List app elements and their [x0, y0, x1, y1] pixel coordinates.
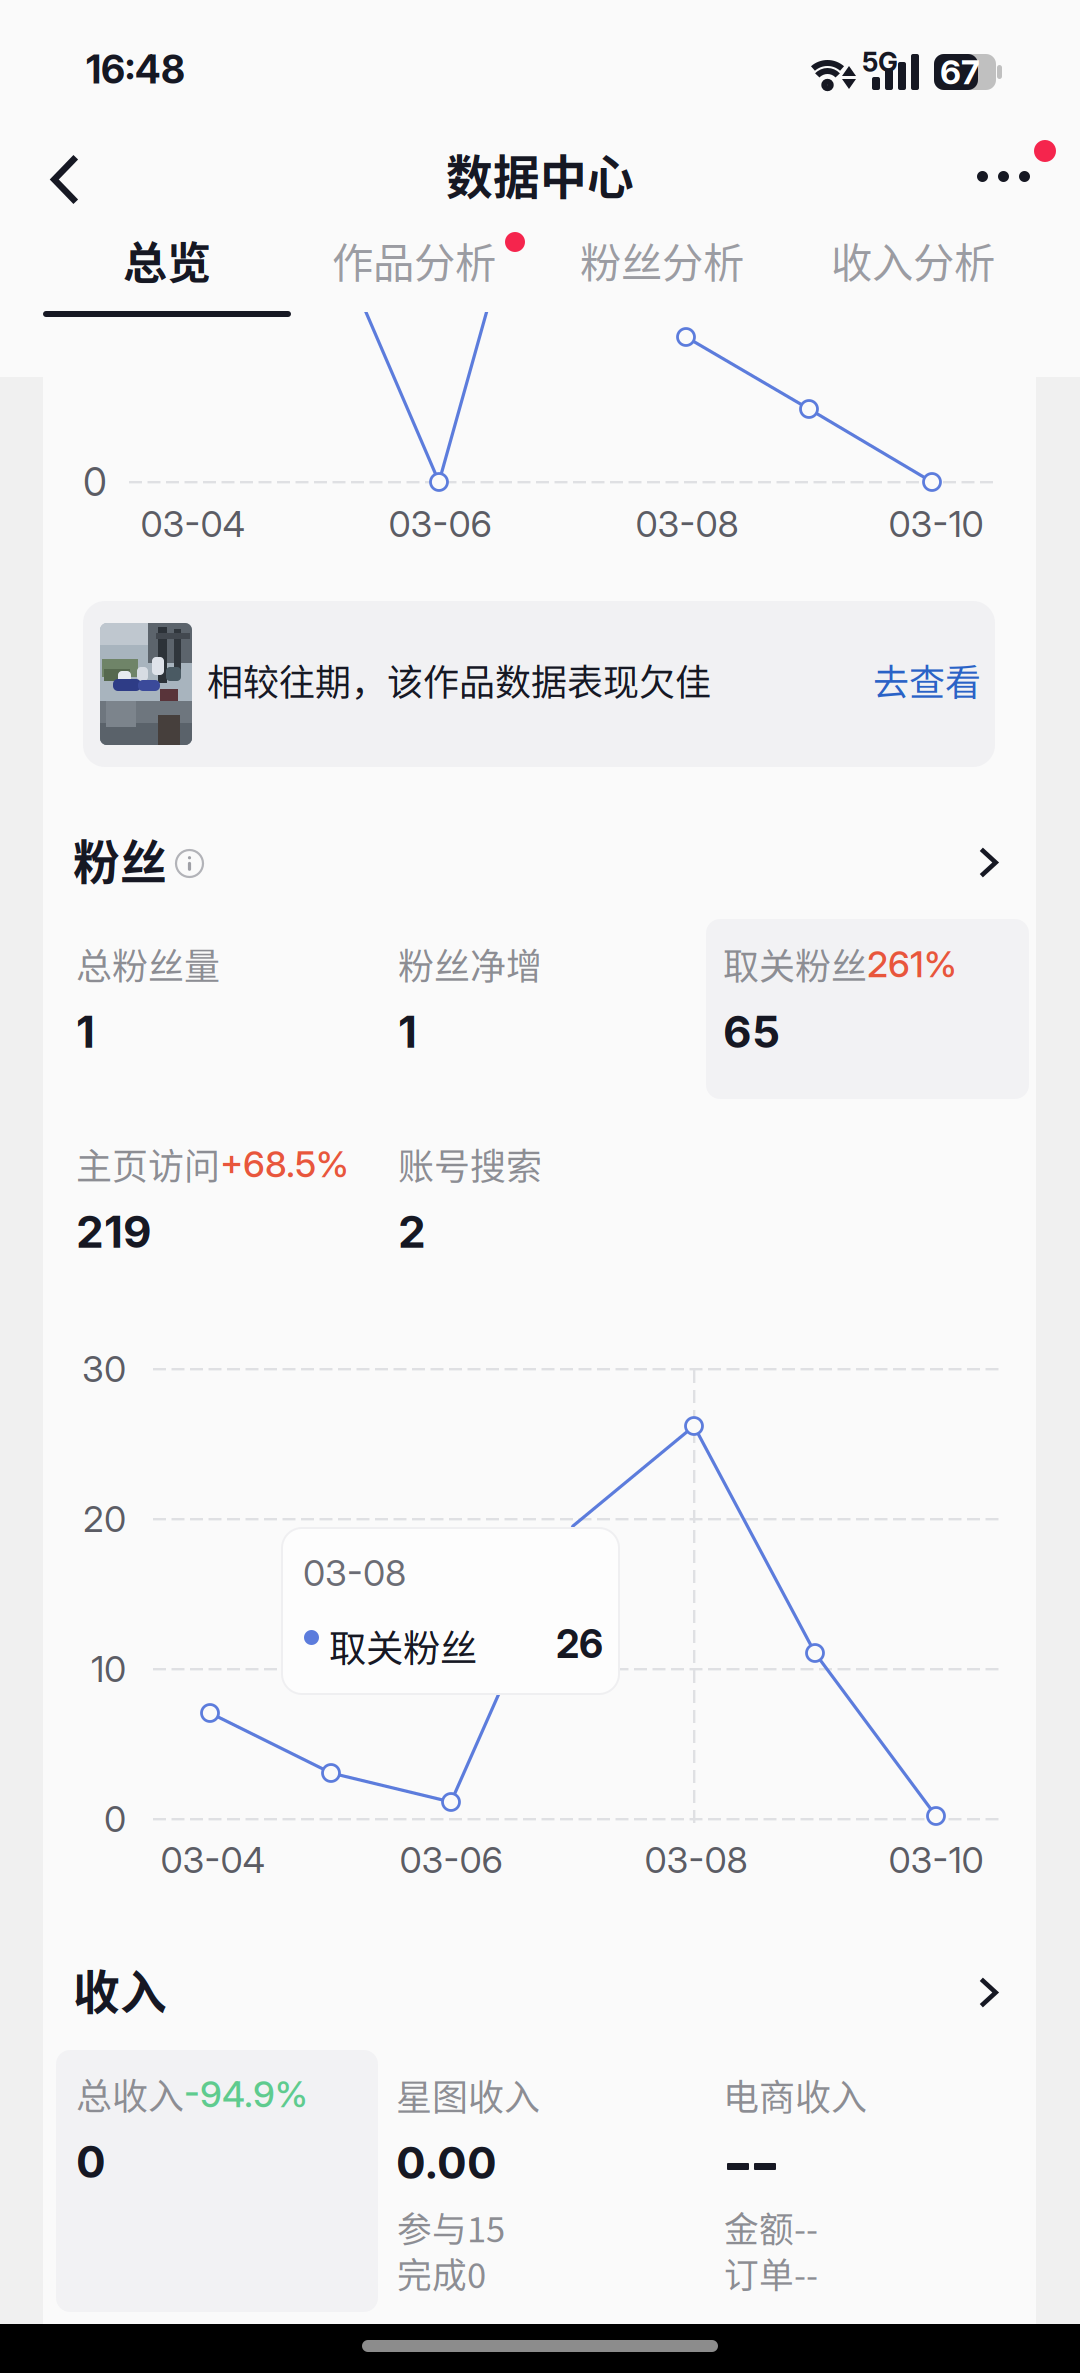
staticText: 粉丝 — [73, 825, 167, 893]
staticText: -94.9% — [184, 2072, 308, 2116]
staticText: 2 — [398, 1205, 426, 1258]
staticText: 03-10 — [888, 1838, 983, 1882]
staticText: 总粉丝量 — [76, 938, 220, 990]
staticText: 219 — [76, 1205, 152, 1258]
staticText: 取关粉丝 — [723, 938, 867, 990]
staticText: 1 — [76, 1005, 95, 1058]
staticText: 粉丝分析 — [580, 230, 744, 290]
staticText: 电商收入 — [723, 2069, 867, 2121]
staticText: 账号搜索 — [398, 1138, 542, 1190]
staticText: 03-08 — [644, 1838, 747, 1882]
button[interactable]: 相较往期，该作品数据表现欠佳 — [83, 601, 995, 767]
staticText: 10 — [91, 1647, 126, 1691]
staticText: 16:48 — [86, 46, 185, 93]
staticText: 1 — [398, 1005, 417, 1058]
staticText: 粉丝净增 — [398, 938, 542, 990]
staticText: 03-04 — [140, 502, 245, 546]
staticText: 20 — [83, 1497, 126, 1541]
staticText: 去查看 — [873, 654, 981, 706]
staticText: 0 — [83, 459, 107, 505]
button[interactable]: 更多 — [950, 120, 1080, 216]
staticText: 03-10 — [888, 502, 983, 546]
staticText: 总览 — [123, 228, 211, 292]
staticText: 65 — [723, 1005, 780, 1058]
staticText: 261% — [867, 942, 957, 986]
staticText: 03-06 — [388, 502, 491, 546]
staticText: 30 — [82, 1347, 126, 1391]
staticText: 0 — [104, 1797, 126, 1841]
staticText: 0.00 — [396, 2136, 497, 2189]
staticText: 数据中心 — [446, 140, 634, 208]
staticText: 总收入 — [76, 2068, 184, 2120]
staticText: 星图收入 — [396, 2069, 540, 2121]
button[interactable]: 作品分析 — [290, 216, 538, 312]
staticText: 参与15 — [397, 2202, 505, 2252]
button[interactable]: 收入 — [43, 1944, 1036, 2040]
button[interactable]: 粉丝 — [43, 814, 1036, 910]
staticText: 作品分析 — [332, 230, 496, 290]
staticText: 取关粉丝 — [329, 1619, 477, 1673]
staticText: 0 — [76, 2135, 106, 2188]
button[interactable]: 粉丝分析 — [538, 216, 786, 312]
button[interactable]: 返回 — [0, 120, 128, 216]
staticText: 主页访问 — [76, 1138, 220, 1190]
staticText: 收入 — [73, 1955, 167, 2023]
staticText: 03-04 — [160, 1838, 265, 1882]
staticText: 26 — [556, 1621, 603, 1667]
staticText: 03-08 — [303, 1551, 406, 1595]
button[interactable]: 总览 — [43, 216, 291, 312]
staticText: 相较往期，该作品数据表现欠佳 — [207, 654, 711, 706]
staticText: 5G — [862, 46, 898, 78]
button[interactable]: 收入分析 — [789, 216, 1037, 312]
staticText: 金额-- — [724, 2202, 818, 2252]
staticText: 03-08 — [635, 502, 738, 546]
staticText: 03-06 — [399, 1838, 502, 1882]
staticText: 收入分析 — [831, 230, 995, 290]
staticText: +68.5% — [220, 1142, 349, 1186]
staticText: 完成0 — [397, 2248, 486, 2298]
staticText: 67 — [940, 52, 980, 92]
staticText: 订单-- — [724, 2248, 818, 2298]
